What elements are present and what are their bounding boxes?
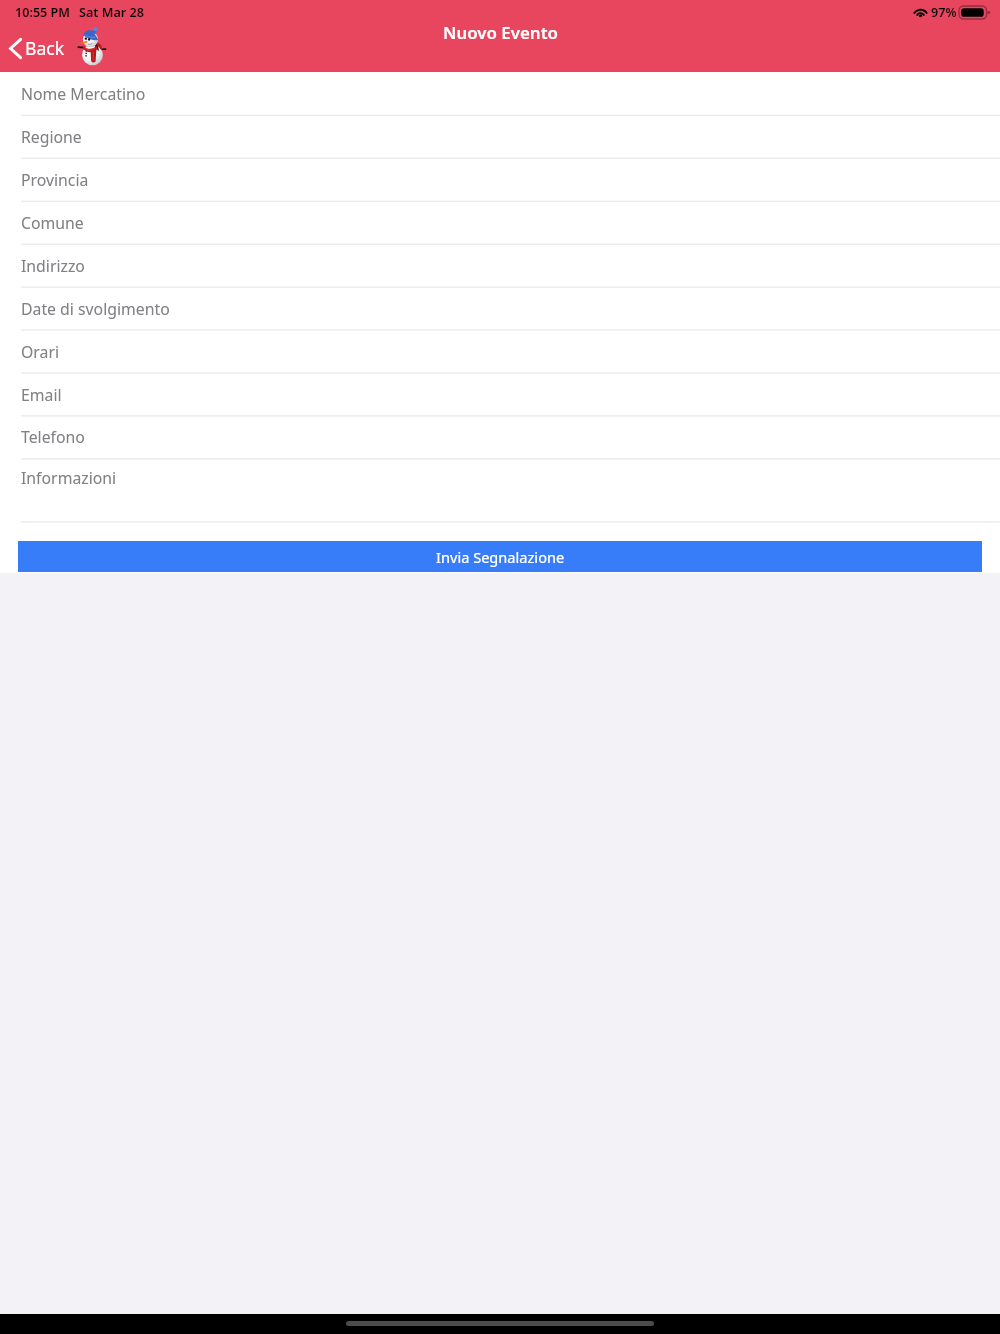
staticText: Date di svolgimento: [21, 298, 170, 320]
button[interactable]: Date di svolgimento: [0, 287, 1000, 330]
staticText: Sat Mar 28: [79, 4, 144, 21]
staticText: Email: [21, 384, 62, 406]
button[interactable]: Informazioni: [0, 458, 1000, 521]
staticText: 97%: [931, 4, 957, 21]
staticText: Provincia: [21, 169, 89, 191]
button[interactable]: Orari: [0, 330, 1000, 373]
staticText: Invia Segnalazione: [436, 547, 565, 567]
button[interactable]: Invia Segnalazione: [18, 541, 982, 572]
other: Back: [8, 37, 23, 60]
button[interactable]: Back: [0, 32, 71, 64]
button[interactable]: Indirizzo: [0, 244, 1000, 287]
button[interactable]: Regione: [0, 115, 1000, 158]
button[interactable]: Provincia: [0, 158, 1000, 201]
staticText: Informazioni: [21, 467, 117, 489]
staticText: 10:55 PM: [15, 4, 71, 21]
staticText: Orari: [21, 341, 60, 363]
staticText: Regione: [21, 126, 82, 148]
staticText: Nome Mercatino: [21, 83, 146, 105]
staticText: Telefono: [21, 426, 85, 448]
button[interactable]: App logo: [77, 27, 108, 64]
button[interactable]: Telefono: [0, 415, 1000, 458]
staticText: Back: [25, 36, 65, 60]
button[interactable]: Nome Mercatino: [0, 72, 1000, 115]
button[interactable]: Comune: [0, 201, 1000, 244]
button[interactable]: Email: [0, 373, 1000, 416]
staticText: Comune: [21, 212, 84, 234]
staticText: Nuovo Evento: [443, 21, 558, 44]
staticText: Indirizzo: [21, 255, 85, 277]
